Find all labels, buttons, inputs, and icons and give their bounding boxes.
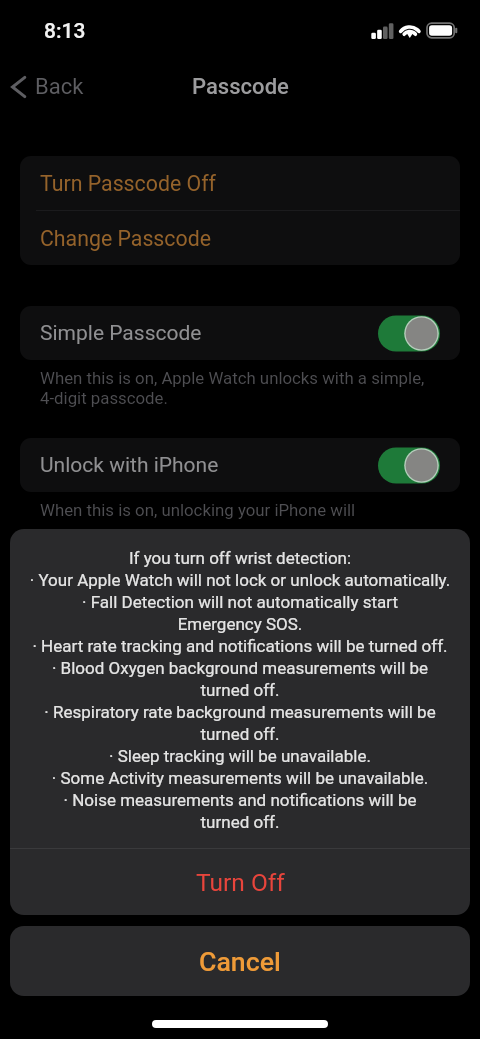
staticText: Simple Passcode (40, 321, 202, 346)
staticText: If you turn off wrist detection: · Your … (25, 548, 455, 832)
staticText: Passcode (192, 74, 289, 100)
staticText: When this is on, Apple Watch unlocks wit… (40, 368, 425, 408)
staticText: Cancel (199, 946, 281, 977)
staticText: When this is on, unlocking your iPhone w… (40, 500, 356, 520)
button[interactable]: Unlock with iPhone (20, 438, 460, 492)
other: Status icons (0, 0, 480, 62)
staticText: Turn Passcode Off (40, 171, 216, 196)
button[interactable]: Cancel (10, 926, 470, 996)
staticText: 8:13 (44, 19, 86, 44)
other: Toggle, on (378, 447, 440, 484)
staticText: Change Passcode (40, 226, 211, 251)
button[interactable]: Simple Passcode (20, 306, 460, 360)
button[interactable]: Turn Off (10, 849, 470, 915)
button[interactable]: Back (0, 74, 96, 100)
button[interactable]: Turn Passcode Off (20, 156, 460, 210)
staticText: Turn Off (196, 868, 285, 897)
staticText: Back (35, 74, 84, 100)
other: Back (11, 76, 26, 98)
button[interactable]: Change Passcode (20, 211, 460, 265)
staticText: Unlock with iPhone (40, 453, 219, 478)
other: Toggle, on (378, 315, 440, 352)
